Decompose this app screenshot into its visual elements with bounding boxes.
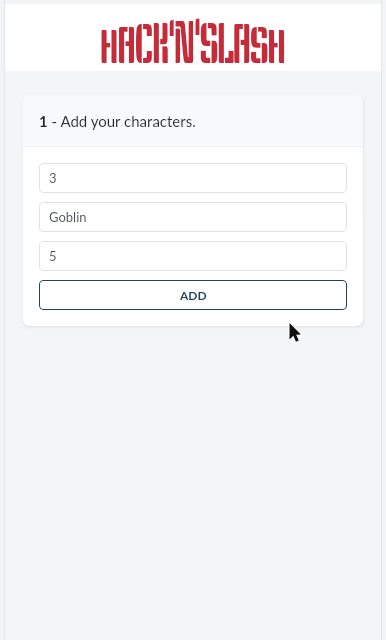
- button[interactable]: Goblin: [39, 202, 347, 232]
- button[interactable]: ADD: [39, 280, 347, 310]
- staticText: Goblin: [49, 209, 87, 225]
- button[interactable]: 5: [39, 241, 347, 271]
- button[interactable]: 3: [39, 163, 347, 193]
- staticText: 3: [49, 170, 57, 186]
- staticText: 5: [49, 248, 57, 264]
- staticText: ADD: [180, 288, 207, 302]
- staticText: 1 - Add your characters.: [39, 112, 196, 130]
